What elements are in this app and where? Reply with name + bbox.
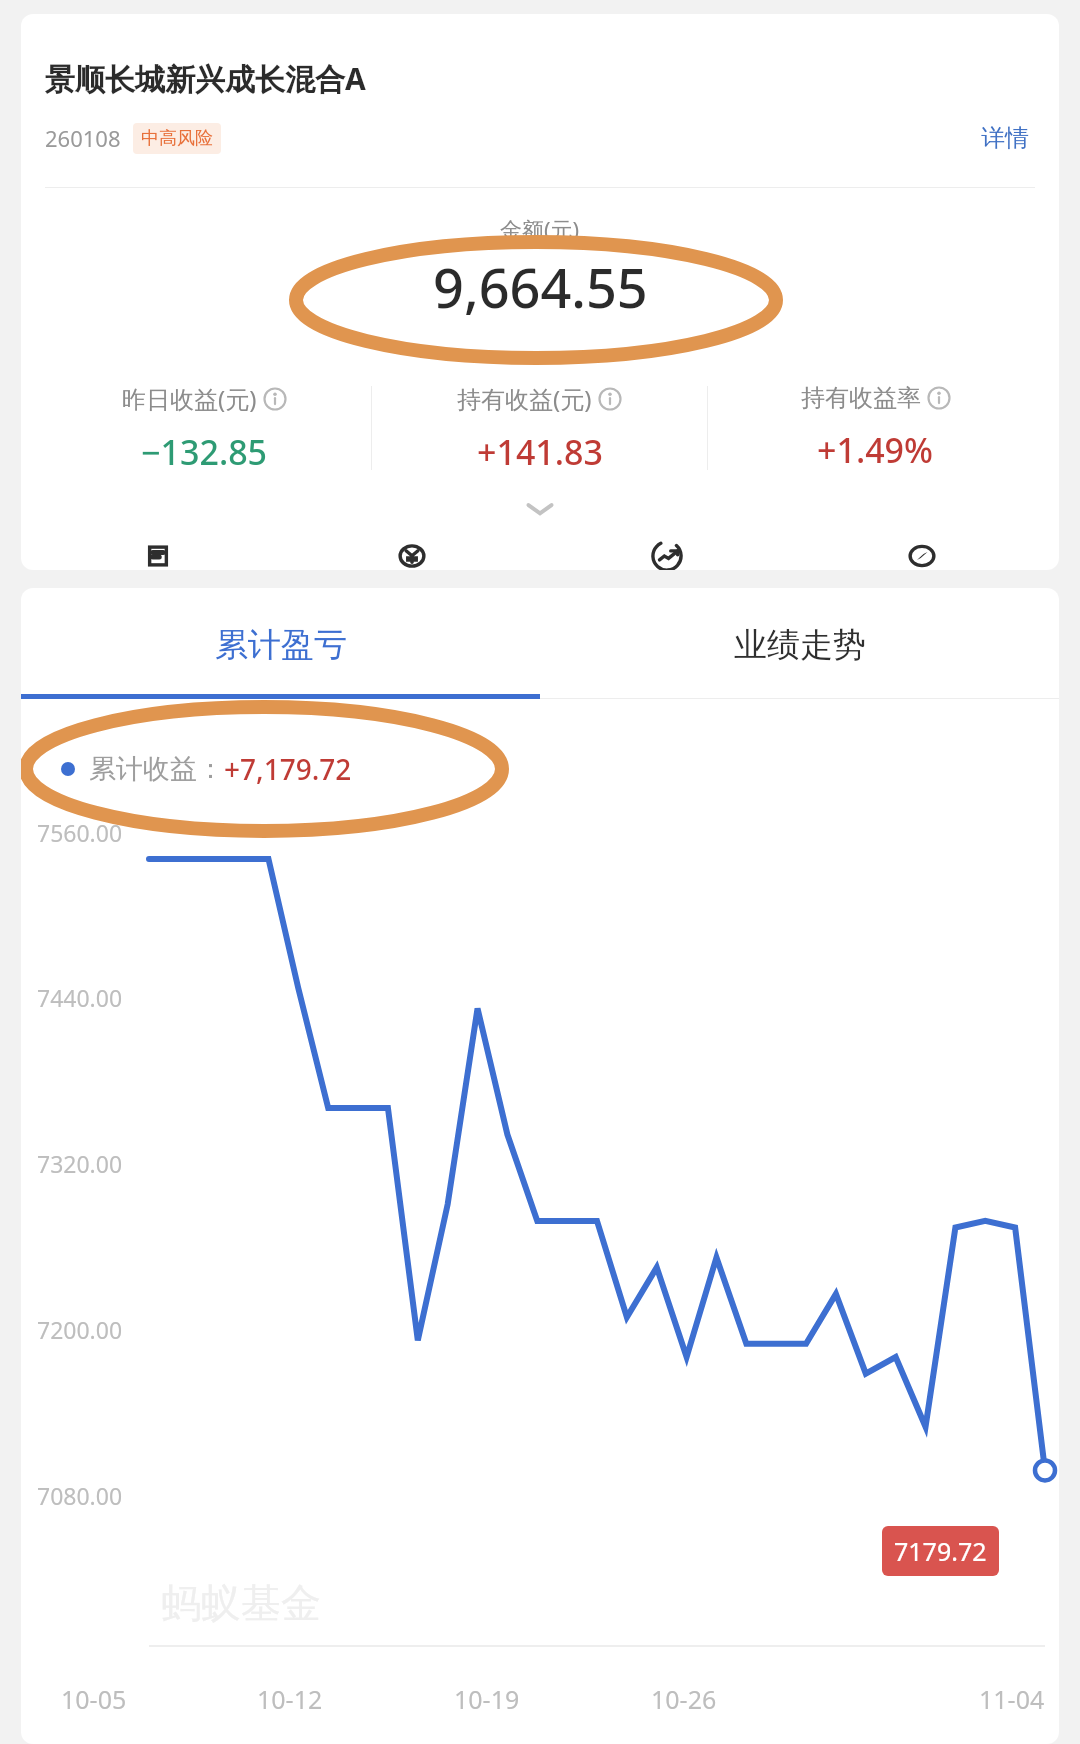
button[interactable]: 持有收益(元) bbox=[372, 372, 707, 484]
staticText: 10-19 bbox=[454, 1682, 520, 1716]
button[interactable]: 业绩走势 bbox=[540, 618, 1059, 672]
staticText: 7179.72 bbox=[894, 1534, 987, 1568]
staticText: 10-05 bbox=[61, 1682, 127, 1716]
staticText: 累计盈亏 bbox=[215, 624, 347, 666]
button[interactable]: 持有收益率 bbox=[708, 372, 1043, 484]
staticText: 业绩走势 bbox=[734, 624, 866, 666]
button[interactable]: 展开 bbox=[21, 494, 1059, 524]
staticText: 金额(元) bbox=[500, 214, 580, 244]
staticText: 7560.00 bbox=[37, 817, 123, 848]
button[interactable]: 收益明细 bbox=[31, 542, 285, 570]
staticText: 260108 bbox=[45, 123, 121, 153]
staticText: 7080.00 bbox=[37, 1480, 123, 1511]
staticText: 10-26 bbox=[651, 1682, 717, 1716]
staticText: 10-12 bbox=[257, 1682, 323, 1716]
staticText: +141.83 bbox=[477, 429, 603, 475]
staticText: 中高风险 bbox=[141, 127, 213, 150]
staticText: 7440.00 bbox=[37, 982, 123, 1013]
button[interactable]: 交易记录 bbox=[285, 542, 539, 570]
staticText: 蚂蚁基金 bbox=[161, 1578, 321, 1628]
staticText: 9,664.55 bbox=[433, 250, 648, 324]
staticText: 11-04 bbox=[979, 1682, 1045, 1716]
staticText: 7200.00 bbox=[37, 1314, 123, 1345]
staticText: 累计收益： bbox=[89, 752, 224, 786]
button[interactable]: 昨日收益(元) bbox=[37, 372, 371, 484]
staticText: +1.49% bbox=[817, 427, 934, 473]
staticText: 持有收益(元) bbox=[457, 382, 592, 415]
staticText: 持有收益率 bbox=[801, 383, 921, 413]
staticText: 7320.00 bbox=[37, 1148, 123, 1179]
staticText: −132.85 bbox=[141, 429, 268, 475]
button[interactable]: 详情 bbox=[975, 117, 1035, 159]
button[interactable]: 投资指南 bbox=[794, 542, 1049, 570]
button[interactable]: 投资计划 bbox=[539, 542, 794, 570]
button[interactable]: 累计盈亏 bbox=[21, 618, 540, 672]
staticText: +7,179.72 bbox=[224, 750, 352, 788]
staticText: 详情 bbox=[981, 123, 1029, 153]
staticText: 昨日收益(元) bbox=[122, 382, 257, 415]
staticText: 景顺长城新兴成长混合A bbox=[45, 58, 366, 99]
